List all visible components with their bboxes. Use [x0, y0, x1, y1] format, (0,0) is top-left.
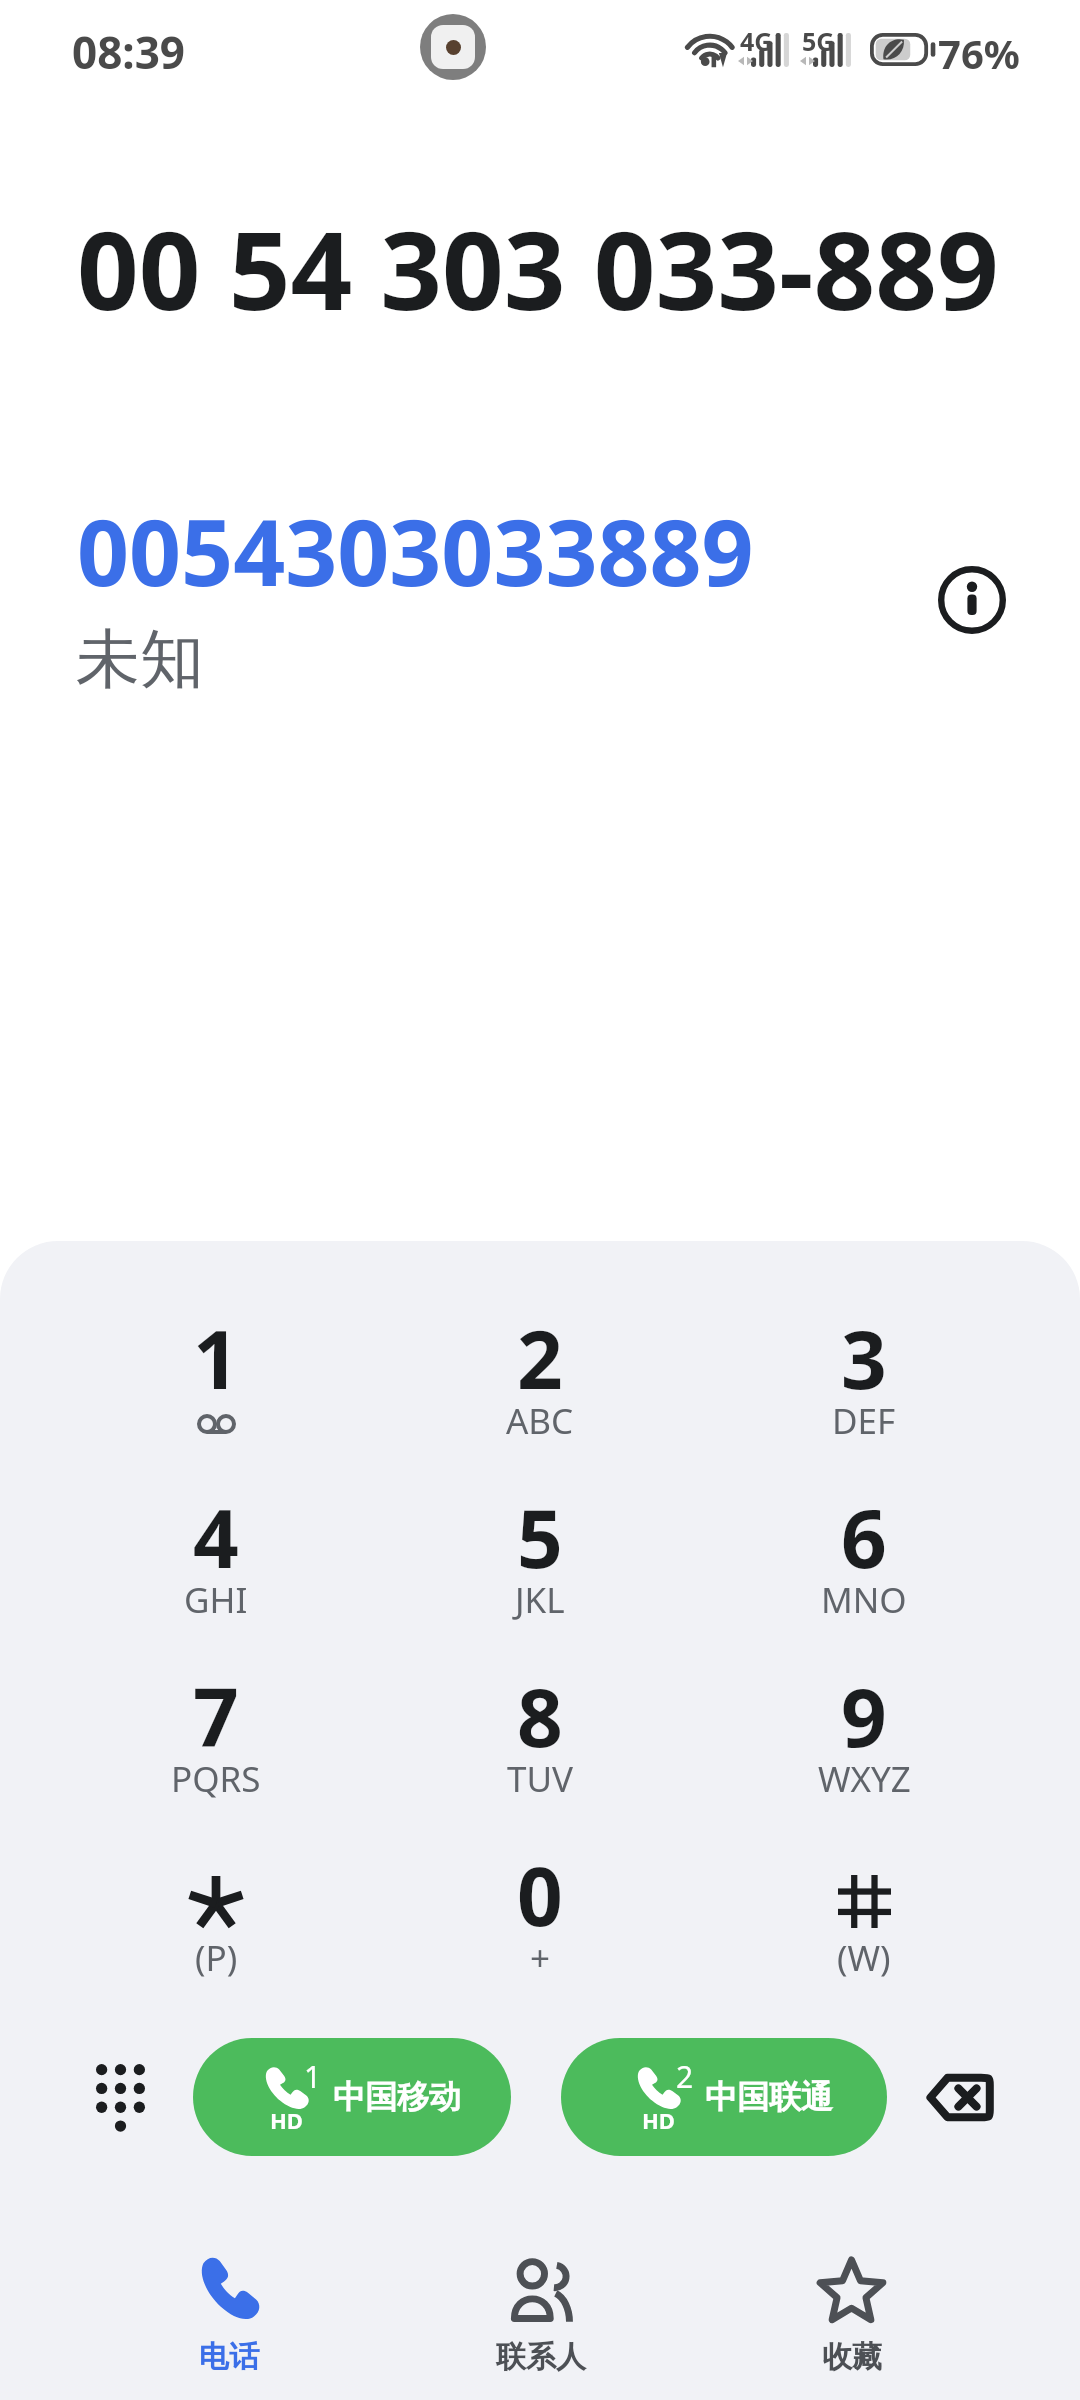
- staticText: (P): [195, 1934, 238, 1982]
- button[interactable]: 1: [54, 1303, 378, 1482]
- staticText: 联系人: [496, 2338, 586, 2376]
- staticText: 1: [304, 2056, 322, 2097]
- staticText: 0: [517, 1840, 563, 1949]
- button[interactable]: 电话: [73, 2200, 385, 2400]
- button[interactable]: 5: [378, 1482, 702, 1661]
- staticText: GHI: [184, 1576, 248, 1624]
- button[interactable]: (W): [702, 1840, 1026, 2019]
- staticText: 5G: [802, 24, 835, 58]
- button[interactable]: 联系人: [385, 2200, 696, 2400]
- staticText: +: [530, 1934, 551, 1982]
- staticText: 3: [841, 1303, 887, 1412]
- staticText: 2: [517, 1303, 563, 1412]
- staticText: 电话: [199, 2338, 259, 2376]
- button[interactable]: Delete: [910, 2049, 1006, 2145]
- staticText: 收藏: [822, 2338, 882, 2376]
- staticText: 7: [193, 1661, 239, 1770]
- button[interactable]: Hide dialpad: [72, 2049, 168, 2145]
- button[interactable]: Call details: [928, 556, 1016, 644]
- staticText: 00 54 303 033-889: [77, 195, 999, 342]
- staticText: 5: [517, 1482, 563, 1591]
- button[interactable]: 4: [54, 1482, 378, 1661]
- staticText: ABC: [506, 1397, 574, 1445]
- staticText: DEF: [832, 1397, 896, 1445]
- button[interactable]: 收藏: [696, 2200, 1007, 2400]
- button[interactable]: 6: [702, 1482, 1026, 1661]
- staticText: TUV: [507, 1755, 574, 1803]
- staticText: 4: [193, 1482, 239, 1591]
- button[interactable]: 1: [193, 2038, 511, 2156]
- staticText: 6: [841, 1482, 887, 1591]
- button[interactable]: (P): [54, 1840, 378, 2019]
- button[interactable]: 2: [561, 2038, 887, 2156]
- staticText: MNO: [821, 1576, 907, 1624]
- staticText: 0054303033889: [77, 489, 754, 613]
- staticText: (W): [837, 1934, 891, 1982]
- staticText: HD: [642, 2105, 675, 2135]
- staticText: 8: [517, 1661, 563, 1770]
- staticText: 中国联通: [705, 2077, 833, 2117]
- staticText: 9: [841, 1661, 887, 1770]
- staticText: 未知: [76, 619, 204, 700]
- staticText: 76%: [938, 26, 1020, 80]
- button[interactable]: 9: [702, 1661, 1026, 1840]
- staticText: 2: [676, 2056, 694, 2097]
- staticText: 1: [193, 1303, 239, 1412]
- button[interactable]: 8: [378, 1661, 702, 1840]
- staticText: WXYZ: [818, 1755, 911, 1803]
- staticText: 中国移动: [333, 2077, 461, 2117]
- staticText: PQRS: [171, 1755, 261, 1803]
- staticText: HD: [270, 2105, 303, 2135]
- button[interactable]: 7: [54, 1661, 378, 1840]
- staticText: 08:39: [72, 22, 186, 82]
- staticText: 4G: [740, 24, 773, 58]
- button[interactable]: 0: [378, 1840, 702, 2019]
- button[interactable]: 3: [702, 1303, 1026, 1482]
- staticText: JKL: [515, 1576, 565, 1624]
- button[interactable]: 2: [378, 1303, 702, 1482]
